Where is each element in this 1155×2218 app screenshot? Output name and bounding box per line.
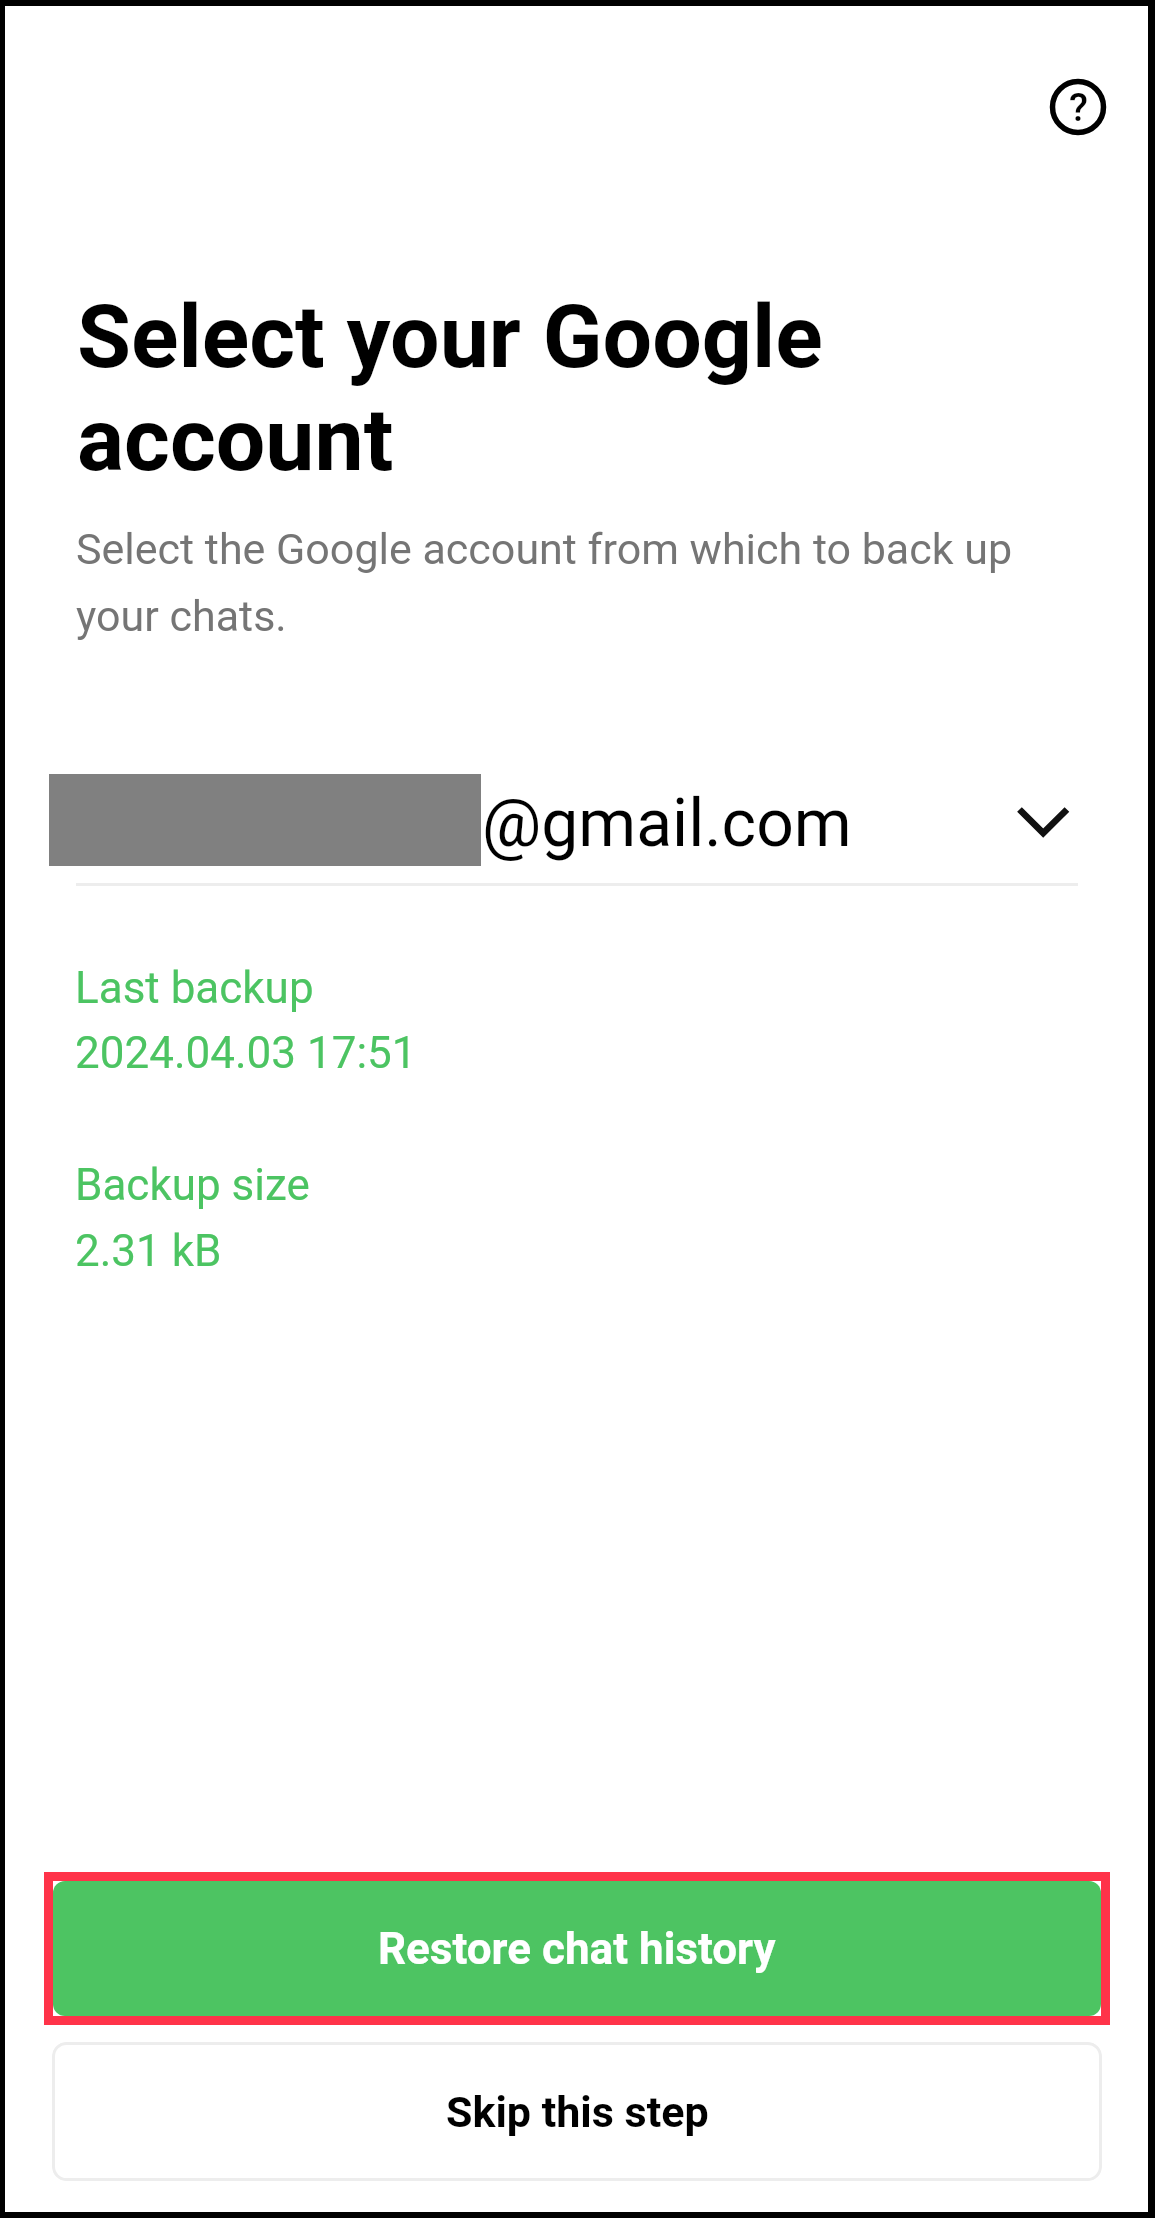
button[interactable]: Select Google account xyxy=(44,760,1100,884)
staticText: Select the Google account from which to … xyxy=(76,524,1056,642)
staticText: 2024.04.03 17:51 xyxy=(75,1027,417,1079)
staticText: 2.31 kB xyxy=(75,1225,222,1277)
button[interactable]: Restore chat history xyxy=(53,1881,1101,2016)
staticText: ? xyxy=(1069,85,1088,131)
staticText: @gmail.com xyxy=(482,785,852,862)
button[interactable]: Help xyxy=(1028,57,1128,157)
staticText: Restore chat history xyxy=(378,1923,776,1975)
staticText: Select your Google account xyxy=(77,286,977,491)
staticText: Skip this step xyxy=(446,2087,709,2137)
staticText: Last backup xyxy=(75,962,314,1014)
staticText: Backup size xyxy=(75,1159,310,1211)
button[interactable]: Skip this step xyxy=(52,2042,1102,2181)
